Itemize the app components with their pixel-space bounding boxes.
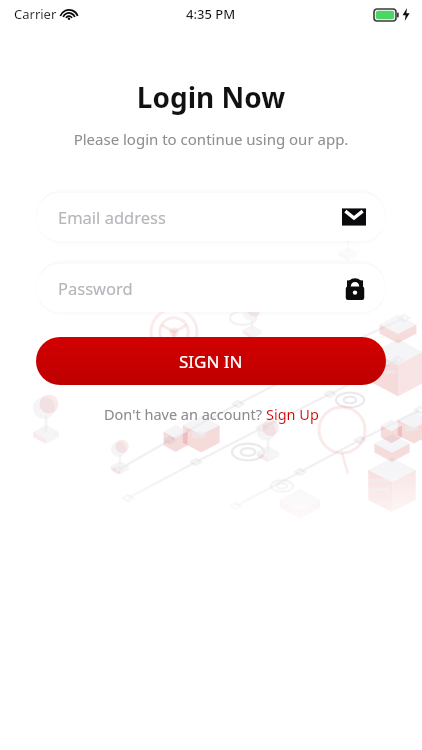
staticText: Please login to continue using our app. [0, 129, 422, 149]
other: Password [344, 276, 366, 300]
staticText: Carrier [14, 5, 57, 23]
button[interactable]: Email address [36, 193, 386, 241]
staticText: Sign Up [266, 404, 319, 424]
staticText: Password [58, 277, 344, 299]
staticText: Email address [58, 206, 342, 228]
staticText: SIGN IN [179, 350, 243, 373]
button[interactable]: Sign Up [266, 404, 319, 424]
staticText: 4:35 PM [186, 5, 236, 23]
button[interactable]: Password [36, 264, 386, 312]
button[interactable]: SIGN IN [36, 337, 386, 385]
staticText: Don't have an account? [104, 404, 266, 424]
other: Email [342, 206, 366, 228]
staticText: Login Now [0, 78, 422, 116]
